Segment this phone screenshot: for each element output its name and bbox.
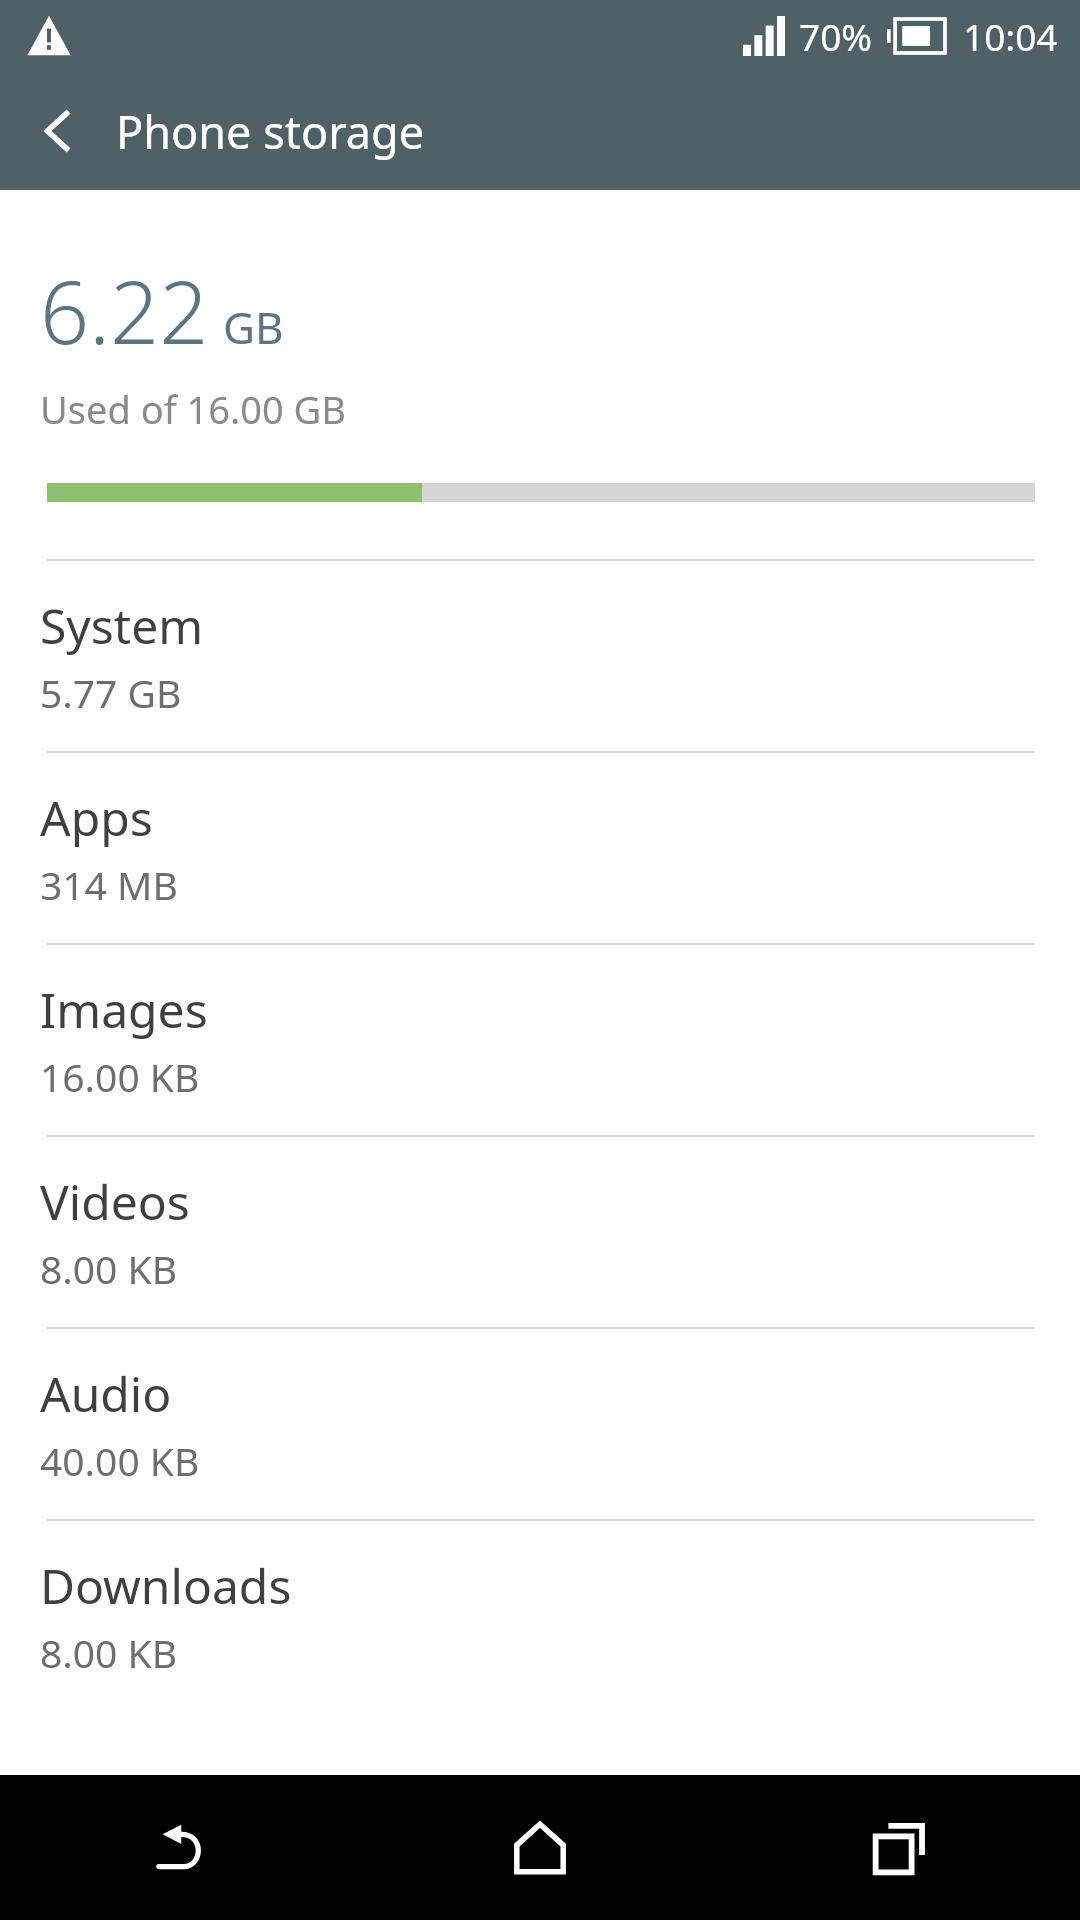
staticText: Phone storage (116, 101, 425, 162)
staticText: GB (223, 297, 284, 357)
staticText: System (40, 593, 204, 658)
button[interactable]: Back (0, 1775, 360, 1920)
button[interactable]: Back (0, 72, 116, 190)
button[interactable]: System (0, 561, 1080, 751)
staticText: 10:04 (963, 11, 1058, 61)
button[interactable]: Audio (0, 1329, 1080, 1519)
staticText: 16.00 KB (40, 1050, 200, 1103)
button[interactable]: Recent apps (720, 1775, 1080, 1920)
button[interactable]: Images (0, 945, 1080, 1135)
staticText: Audio (40, 1361, 172, 1426)
button[interactable]: Videos (0, 1137, 1080, 1327)
button[interactable]: Home (360, 1775, 720, 1920)
button[interactable]: Apps (0, 753, 1080, 943)
staticText: 6.22 (40, 252, 209, 369)
staticText: 5.77 GB (40, 666, 182, 719)
staticText: 40.00 KB (40, 1434, 200, 1487)
button[interactable]: Downloads (0, 1521, 1080, 1711)
staticText: 8.00 KB (40, 1242, 178, 1295)
staticText: Downloads (40, 1553, 292, 1618)
staticText: Images (40, 977, 208, 1042)
staticText: Apps (40, 785, 153, 850)
staticText: Videos (40, 1169, 190, 1234)
staticText: 8.00 KB (40, 1626, 178, 1679)
staticText: 70% (799, 11, 873, 61)
staticText: 314 MB (40, 858, 178, 911)
staticText: Used of 16.00 GB (40, 383, 346, 435)
